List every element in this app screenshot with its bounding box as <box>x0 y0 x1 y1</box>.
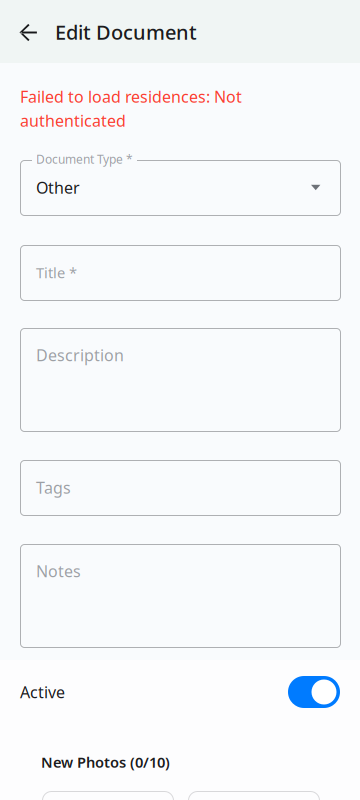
button[interactable]: Back <box>1 1 56 64</box>
button[interactable]: Take photo <box>42 791 173 800</box>
staticText: Edit Document <box>55 19 197 45</box>
staticText: Active <box>20 681 65 703</box>
staticText: Description <box>36 344 124 366</box>
staticText: Document Type * <box>36 151 133 167</box>
staticText: New Photos (0/10) <box>41 752 170 772</box>
staticText: Other <box>36 177 80 198</box>
staticText: Failed to load residences: Not <box>20 86 242 107</box>
button[interactable]: Choose from gallery <box>188 791 319 800</box>
button[interactable]: Active <box>0 668 360 716</box>
staticText: Notes <box>36 560 81 582</box>
staticText: Tags <box>36 477 71 498</box>
staticText: Title * <box>36 263 77 282</box>
staticText: authenticated <box>20 110 126 131</box>
